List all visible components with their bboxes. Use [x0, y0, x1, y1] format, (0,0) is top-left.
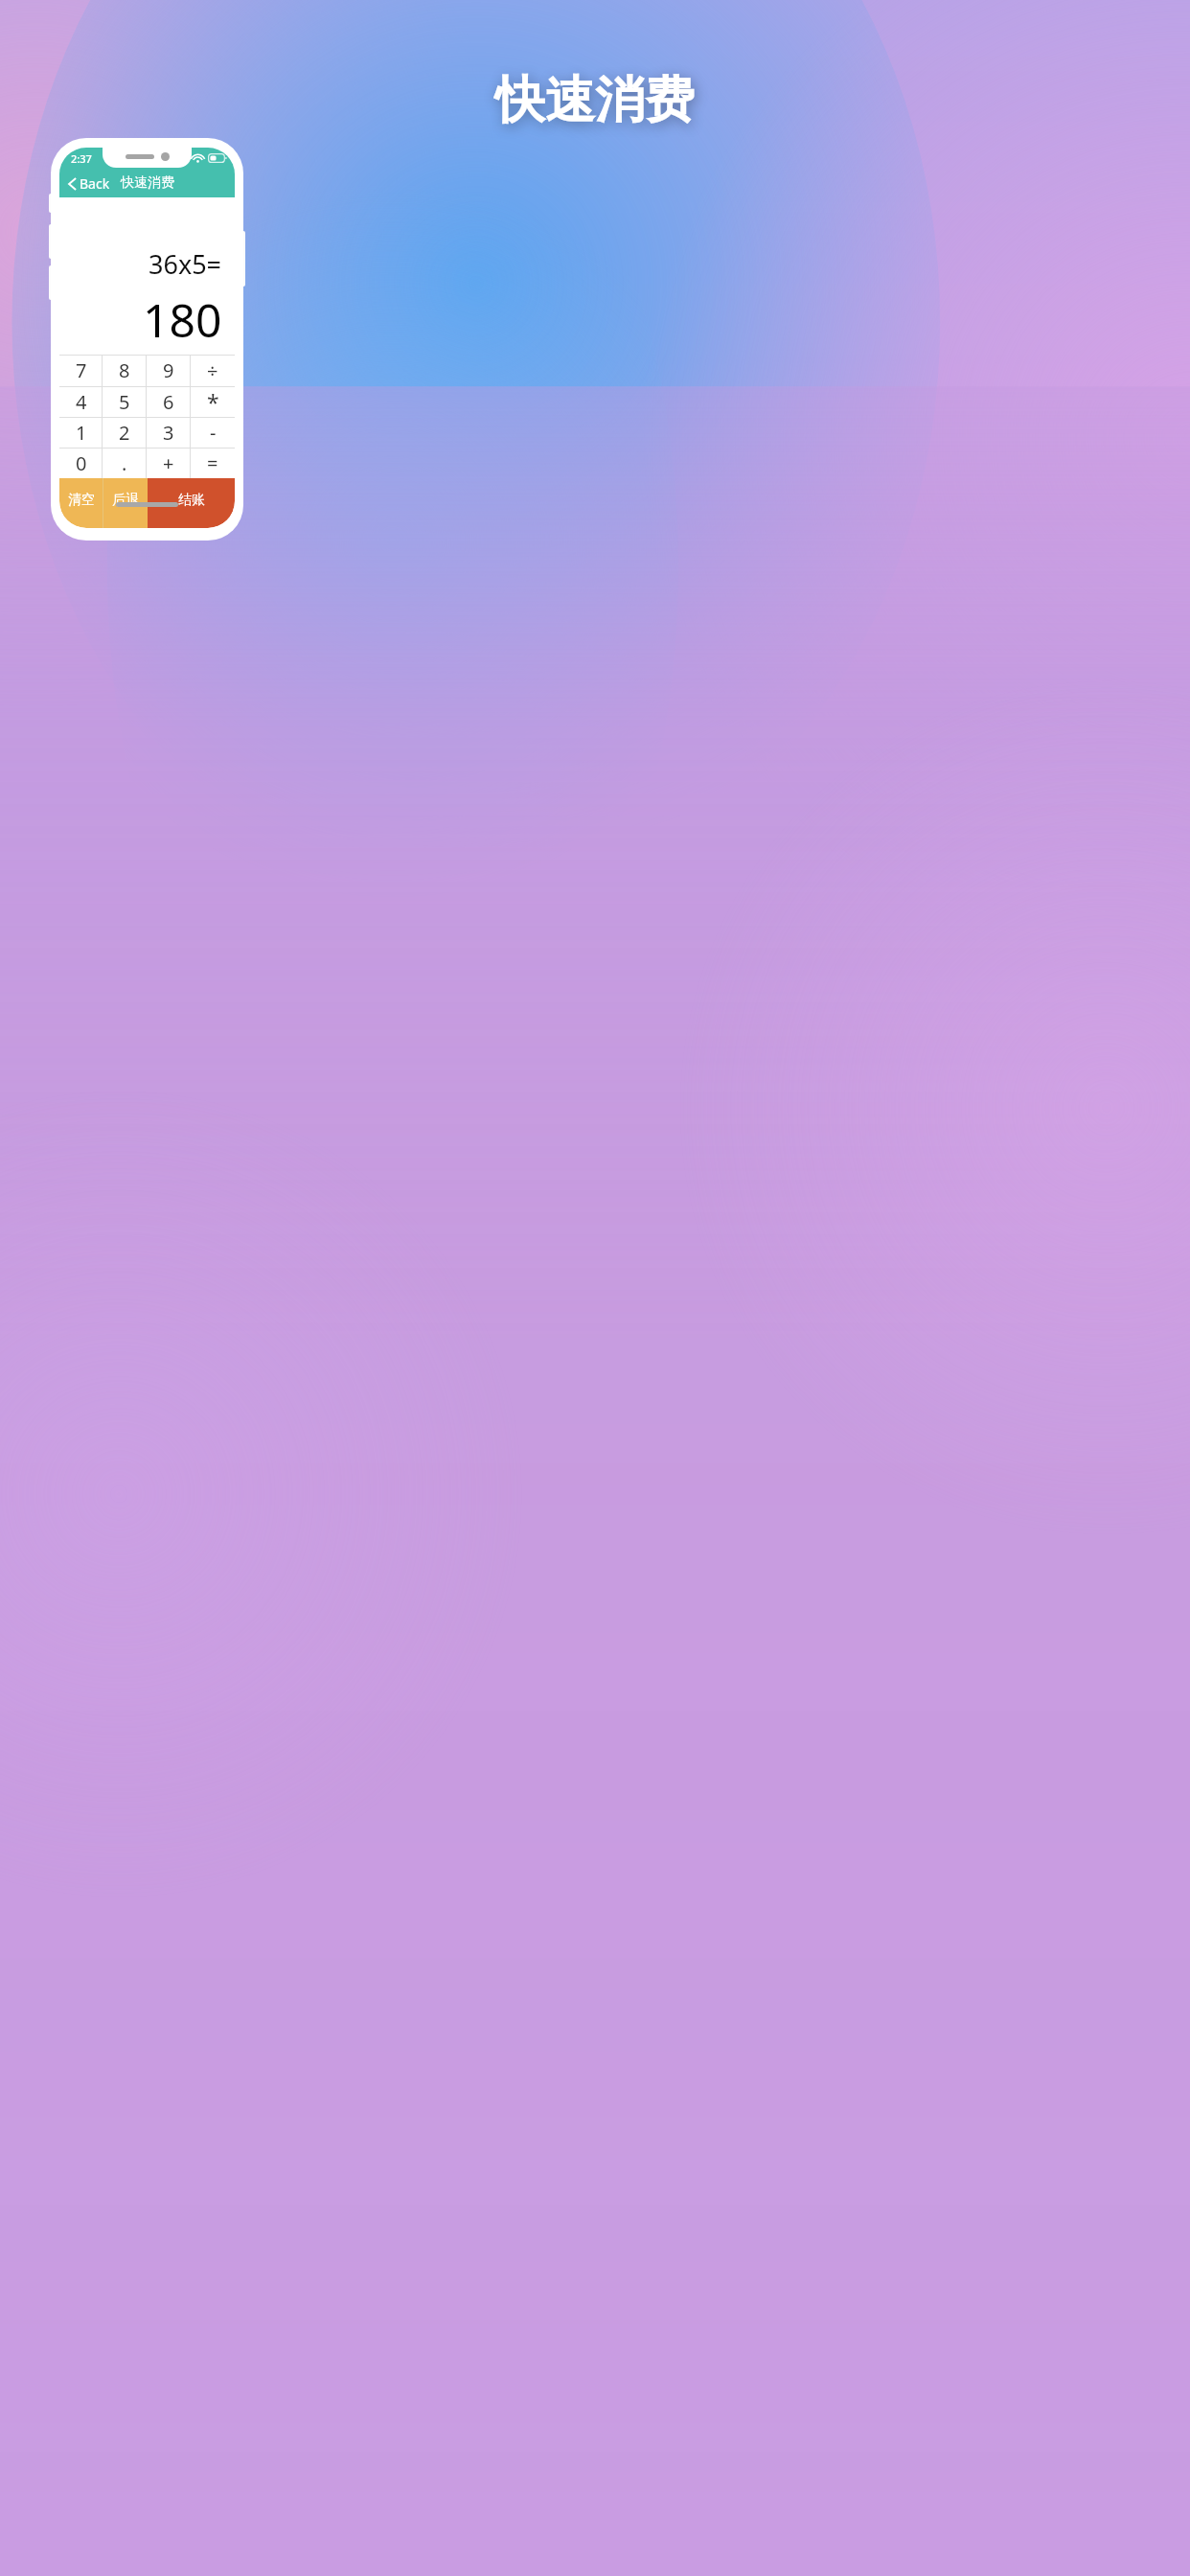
- button[interactable]: 7: [59, 355, 103, 386]
- button[interactable]: =: [191, 448, 235, 478]
- staticText: ÷: [207, 357, 218, 383]
- button[interactable]: .: [103, 448, 147, 478]
- button[interactable]: 0: [59, 448, 103, 478]
- staticText: .: [122, 450, 127, 476]
- staticText: 结账: [178, 492, 205, 509]
- staticText: 后退: [112, 492, 139, 509]
- staticText: 清空: [68, 492, 95, 509]
- button[interactable]: 1: [59, 417, 103, 448]
- button[interactable]: 6: [147, 386, 191, 417]
- button[interactable]: ÷: [191, 355, 235, 386]
- staticText: +: [163, 450, 174, 476]
- staticText: 8: [119, 357, 130, 383]
- staticText: 快速消费: [495, 69, 695, 132]
- staticText: 2: [119, 420, 130, 446]
- button[interactable]: +: [147, 448, 191, 478]
- button[interactable]: 结账: [148, 478, 235, 528]
- staticText: =: [207, 450, 218, 476]
- button[interactable]: 2: [103, 417, 147, 448]
- button[interactable]: 3: [147, 417, 191, 448]
- staticText: 快速消费: [121, 174, 174, 192]
- button[interactable]: -: [191, 417, 235, 448]
- staticText: 180: [143, 288, 222, 351]
- button[interactable]: Back: [59, 171, 120, 196]
- staticText: Back: [80, 174, 110, 193]
- staticText: 7: [76, 357, 87, 383]
- button[interactable]: *: [191, 386, 235, 417]
- button[interactable]: 后退: [103, 478, 148, 528]
- staticText: -: [210, 420, 217, 446]
- staticText: 9: [163, 357, 174, 383]
- staticText: 3: [163, 420, 174, 446]
- button[interactable]: 9: [147, 355, 191, 386]
- staticText: *: [207, 387, 219, 417]
- staticText: 4: [76, 389, 87, 415]
- staticText: 1: [76, 420, 87, 446]
- button[interactable]: 清空: [59, 478, 103, 528]
- staticText: 36x5=: [149, 246, 222, 282]
- staticText: 5: [119, 389, 130, 415]
- staticText: 2:37: [71, 151, 92, 166]
- staticText: 6: [163, 389, 174, 415]
- button[interactable]: 4: [59, 386, 103, 417]
- button[interactable]: 8: [103, 355, 147, 386]
- button[interactable]: 5: [103, 386, 147, 417]
- staticText: 0: [76, 450, 87, 476]
